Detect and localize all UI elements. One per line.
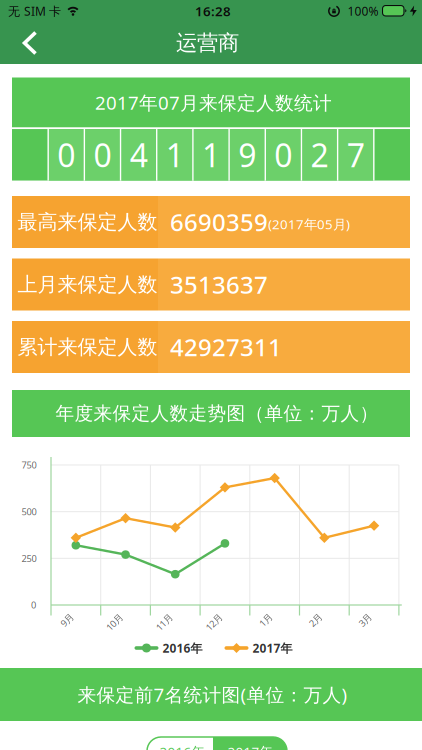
- staticText: 2017年: [227, 743, 272, 750]
- staticText: 2: [310, 134, 328, 176]
- staticText: 来保定前7名统计图(单位：万人): [77, 682, 347, 707]
- staticText: 250: [21, 552, 36, 564]
- staticText: 年度来保定人数走势图（单位：万人）: [55, 402, 378, 425]
- staticText: 运营商: [176, 30, 239, 56]
- staticText: 无 SIM 卡: [8, 3, 61, 19]
- staticText: 0: [31, 599, 36, 611]
- staticText: 12月: [204, 616, 223, 628]
- button[interactable]: 2017年: [224, 640, 292, 656]
- staticText: 2016年: [162, 640, 202, 656]
- button[interactable]: 2016年: [134, 640, 202, 656]
- staticText: 100%: [347, 3, 378, 19]
- staticText: 10月: [105, 616, 124, 628]
- staticText: 2016年: [159, 743, 204, 750]
- staticText: 最高来保定人数: [17, 210, 157, 234]
- staticText: 0: [93, 134, 111, 176]
- staticText: 750: [21, 459, 36, 471]
- staticText: 9月: [60, 614, 74, 626]
- staticText: 1: [166, 134, 184, 176]
- staticText: 2017年: [252, 640, 292, 656]
- staticText: 3513637: [170, 269, 268, 300]
- staticText: 2月: [308, 614, 322, 626]
- staticText: 1月: [259, 614, 273, 626]
- button[interactable]: 2016年: [147, 737, 287, 750]
- staticText: 2017年07月来保定人数统计: [95, 90, 332, 115]
- button[interactable]: Back: [8, 22, 52, 64]
- staticText: 3月: [358, 614, 372, 626]
- staticText: 11月: [155, 616, 174, 628]
- staticText: 1: [202, 134, 220, 176]
- staticText: 7: [347, 134, 365, 176]
- staticText: 4: [130, 134, 148, 176]
- staticText: 9: [238, 134, 256, 176]
- staticText: 500: [21, 505, 36, 518]
- button[interactable]: 2017年: [213, 737, 287, 750]
- staticText: 累计来保定人数: [17, 335, 157, 359]
- staticText: 0: [274, 134, 292, 176]
- staticText: (2017年05月): [268, 215, 350, 233]
- staticText: 16:28: [195, 2, 231, 20]
- staticText: 上月来保定人数: [17, 272, 157, 297]
- staticText: 6690359: [170, 206, 268, 238]
- staticText: 0: [57, 134, 75, 176]
- staticText: 42927311: [170, 331, 282, 363]
